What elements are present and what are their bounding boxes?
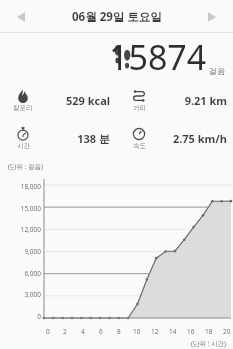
button[interactable]: 거리	[116, 81, 233, 119]
button[interactable]: 칼로리	[0, 81, 116, 119]
staticText: 15,000	[0, 204, 41, 213]
button[interactable]: Next day	[201, 6, 223, 28]
staticText: 12	[151, 327, 159, 336]
staticText: 4	[81, 327, 85, 336]
staticText: 6	[99, 327, 103, 336]
staticText: 20	[223, 327, 231, 336]
staticText: 0	[46, 327, 50, 336]
staticText: 칼로리	[13, 104, 33, 112]
staticText: 529 kcal	[46, 93, 110, 108]
staticText: 12,000	[0, 225, 41, 234]
staticText: 3,000	[0, 290, 41, 299]
staticText: 15874	[109, 34, 207, 80]
staticText: 8	[117, 327, 121, 336]
staticText: 2	[63, 327, 67, 336]
staticText: 18,000	[0, 182, 41, 191]
staticText: 10	[133, 327, 141, 336]
staticText: 시간	[17, 142, 30, 150]
staticText: 걸음	[209, 66, 225, 76]
staticText: 0	[0, 312, 41, 321]
button[interactable]: 속도	[116, 119, 233, 157]
staticText: 거리	[133, 104, 146, 112]
staticText: 2.75 km/h	[162, 131, 227, 146]
button[interactable]: 15874	[0, 33, 233, 81]
button[interactable]: Previous day	[10, 6, 32, 28]
staticText: (단위 : 걸음)	[8, 162, 44, 171]
staticText: 속도	[133, 142, 146, 150]
staticText: 9,000	[0, 247, 41, 256]
staticText: 18	[205, 327, 213, 336]
staticText: 138 분	[46, 131, 110, 146]
staticText: 9.21 km	[162, 93, 227, 108]
staticText: 06월 29일 토요일	[72, 9, 162, 25]
staticText: 6,000	[0, 269, 41, 278]
button[interactable]: 시간	[0, 119, 116, 157]
staticText: (단위 : 시간)	[191, 339, 227, 348]
staticText: 14	[169, 327, 177, 336]
staticText: 16	[187, 327, 195, 336]
